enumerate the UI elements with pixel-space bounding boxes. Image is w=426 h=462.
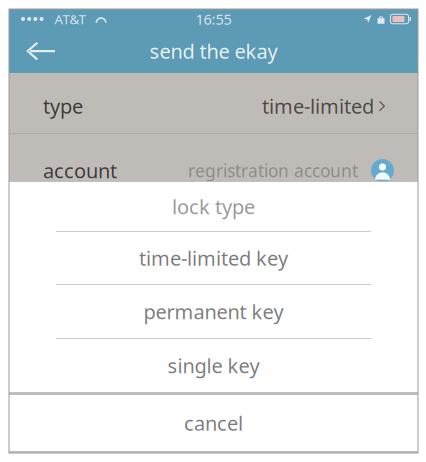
staticText: cancel — [184, 410, 243, 436]
button[interactable]: permanent key — [9, 285, 418, 338]
staticText: time-limited — [262, 93, 374, 119]
staticText: AT&T — [55, 10, 86, 28]
button[interactable]: Back — [9, 29, 67, 73]
staticText: permanent key — [143, 298, 283, 325]
staticText: time-limited key — [139, 245, 288, 271]
staticText: single key — [167, 352, 259, 379]
button[interactable]: type — [9, 73, 418, 133]
button[interactable]: lock type — [9, 182, 418, 231]
staticText: 16:55 — [195, 9, 231, 29]
button[interactable]: time-limited key — [9, 232, 418, 284]
button[interactable]: cancel — [9, 395, 418, 451]
staticText: regristration account — [188, 159, 358, 182]
staticText: send the ekay — [149, 38, 277, 64]
button[interactable]: account — [9, 134, 418, 201]
button[interactable]: single key — [9, 339, 418, 392]
staticText: type — [43, 93, 83, 119]
staticText: lock type — [172, 193, 255, 220]
staticText: account — [43, 157, 117, 184]
